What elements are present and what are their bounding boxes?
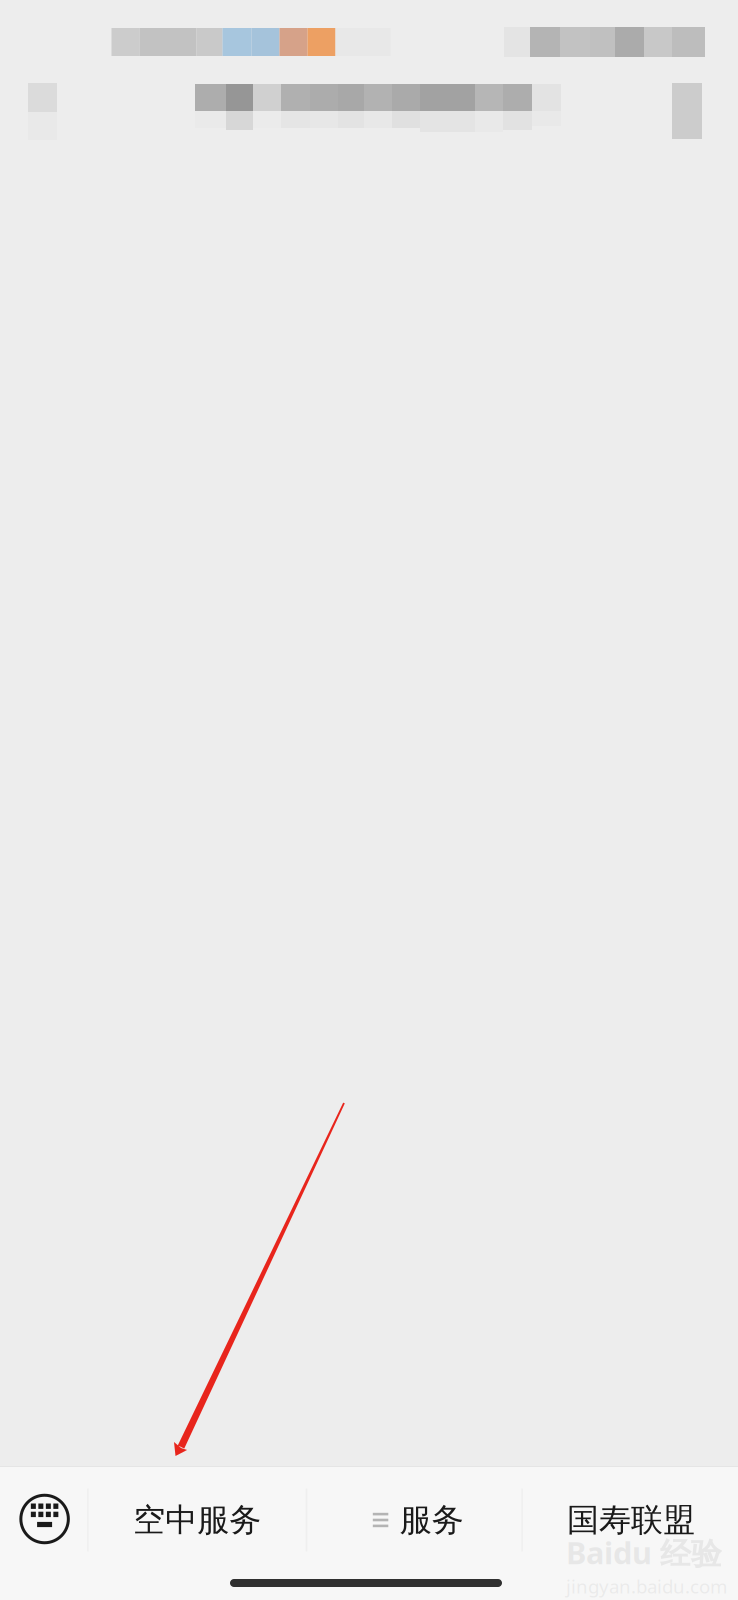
- staticText: Baidu 经验: [566, 1532, 722, 1573]
- button[interactable]: 空中服务: [89, 1467, 306, 1573]
- button[interactable]: Keyboard: [0, 1467, 87, 1573]
- button[interactable]: 国寿联盟: [523, 1467, 738, 1573]
- staticText: 服务: [400, 1500, 464, 1540]
- staticText: jingyan.baidu.com: [566, 1574, 727, 1599]
- staticText: 空中服务: [133, 1500, 261, 1540]
- button[interactable]: 服务: [307, 1467, 521, 1573]
- staticText: 国寿联盟: [567, 1500, 695, 1540]
